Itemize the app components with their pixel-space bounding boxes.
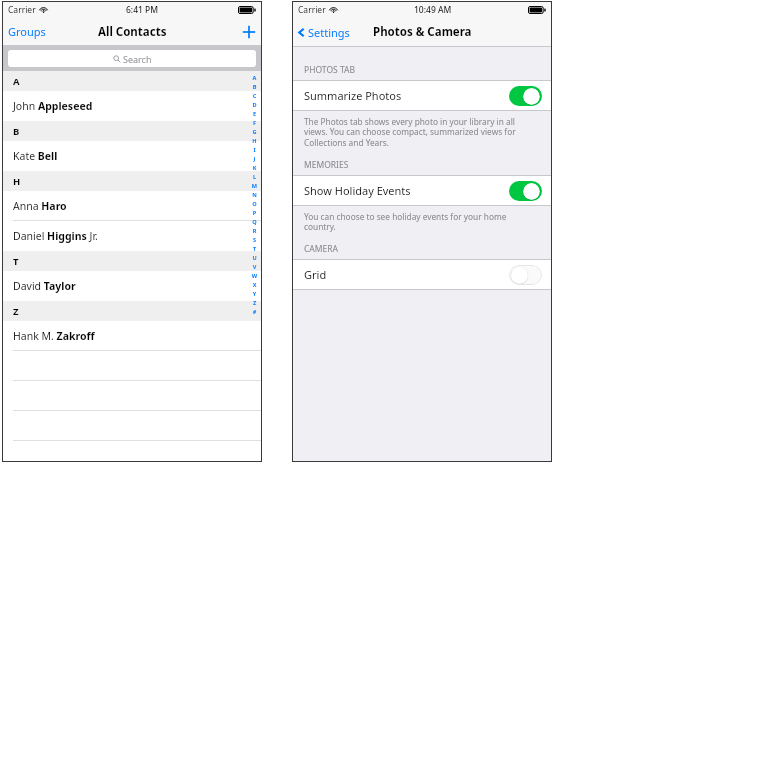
staticText: Hank M. Zakroff	[13, 329, 95, 343]
staticText: David Taylor	[13, 279, 76, 293]
staticText: T	[250, 245, 259, 254]
button[interactable]: Search	[8, 50, 256, 67]
staticText: 6:41 PM	[126, 4, 159, 16]
button[interactable]: Add contact	[236, 21, 262, 43]
staticText: Kate Bell	[13, 149, 58, 163]
staticText: W	[250, 272, 259, 281]
staticText: R	[250, 227, 259, 236]
staticText: Photos & Camera	[373, 24, 472, 40]
staticText: C	[250, 92, 259, 101]
staticText: T	[13, 255, 19, 268]
staticText: E	[250, 110, 259, 119]
staticText: John Appleseed	[13, 99, 93, 113]
staticText: Show Holiday Events	[304, 183, 411, 198]
staticText: L	[250, 173, 259, 182]
button[interactable]: Anna Haro	[2, 191, 262, 221]
staticText: A	[250, 74, 259, 83]
button[interactable]: Switch off	[509, 265, 542, 285]
button[interactable]: Switch on	[509, 86, 542, 106]
button[interactable]: John Appleseed	[2, 91, 262, 121]
staticText: 10:49 AM	[414, 4, 452, 16]
staticText: X	[250, 281, 259, 290]
staticText: Carrier	[8, 4, 36, 16]
button[interactable]: David Taylor	[2, 271, 262, 301]
staticText: D	[250, 101, 259, 110]
staticText: I	[250, 146, 259, 155]
staticText: Settings	[308, 25, 350, 40]
staticText: You can choose to see holiday events for…	[304, 211, 538, 233]
staticText: K	[250, 164, 259, 173]
button[interactable]: Summarize Photos	[292, 81, 552, 110]
staticText: A	[13, 75, 20, 88]
staticText: V	[250, 263, 259, 272]
staticText: PHOTOS TAB	[304, 64, 355, 76]
staticText: M	[250, 182, 259, 191]
button[interactable]: Daniel Higgins Jr.	[2, 221, 262, 251]
staticText: F	[250, 119, 259, 128]
staticText: Summarize Photos	[304, 88, 402, 103]
staticText: P	[250, 209, 259, 218]
button[interactable]: Kate Bell	[2, 141, 262, 171]
button[interactable]: Hank M. Zakroff	[2, 321, 262, 351]
staticText: #	[250, 308, 259, 317]
staticText: Anna Haro	[13, 199, 67, 213]
staticText: CAMERA	[304, 243, 338, 255]
button[interactable]: Grid	[292, 260, 552, 289]
staticText: Search	[123, 53, 152, 65]
staticText: Grid	[304, 267, 327, 282]
staticText: B	[250, 83, 259, 92]
button[interactable]: Alphabet index	[250, 74, 259, 317]
staticText: Groups	[8, 24, 46, 39]
staticText: MEMORIES	[304, 159, 349, 171]
staticText: U	[250, 254, 259, 263]
staticText: B	[13, 125, 20, 138]
button[interactable]: Settings	[292, 20, 356, 45]
staticText: Z	[250, 299, 259, 308]
button[interactable]: Show Holiday Events	[292, 176, 552, 205]
staticText: All Contacts	[98, 24, 167, 40]
staticText: Y	[250, 290, 259, 299]
staticText: N	[250, 191, 259, 200]
staticText: S	[250, 236, 259, 245]
staticText: Daniel Higgins Jr.	[13, 229, 98, 243]
staticText: G	[250, 128, 259, 137]
staticText: H	[250, 137, 259, 146]
staticText: The Photos tab shows every photo in your…	[304, 116, 538, 149]
staticText: Z	[13, 305, 19, 318]
staticText: Q	[250, 218, 259, 227]
staticText: Carrier	[298, 4, 326, 16]
staticText: J	[250, 155, 259, 164]
button[interactable]: Groups	[2, 19, 52, 44]
staticText: O	[250, 200, 259, 209]
staticText: H	[13, 175, 21, 188]
button[interactable]: Switch on	[509, 181, 542, 201]
